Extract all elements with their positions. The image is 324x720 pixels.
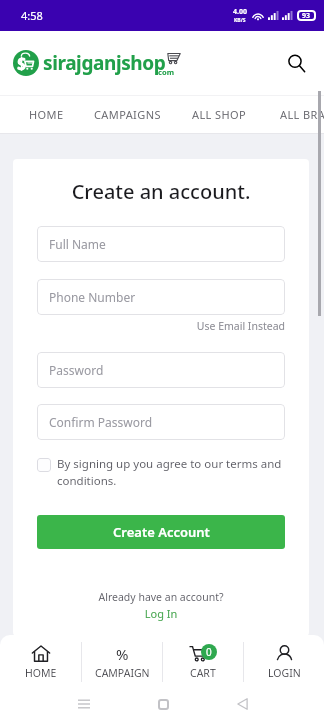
staticText: Full Name [49,236,106,252]
staticText: 4.00 [233,7,247,17]
staticText: By signing up you agree to our terms and… [57,456,289,489]
staticText: Phone Number [49,289,136,305]
button[interactable]: Phone Number [37,279,285,315]
staticText: HOME [25,666,57,680]
staticText: .com [156,67,174,77]
button[interactable]: Use Email Instead [37,319,285,333]
staticText: 0 [206,645,212,659]
button[interactable]: 0 [163,635,243,688]
staticText: sirajganjshop [43,50,166,76]
staticText: LOGIN [268,666,301,680]
staticText: Confirm Password [49,414,153,430]
staticText: HOME [29,107,64,122]
button[interactable]: Back [226,688,258,720]
button[interactable]: CAMPAIGNS [94,107,161,122]
staticText: 4:58 [21,8,43,23]
staticText: CART [190,666,216,680]
staticText: % [116,644,129,663]
button[interactable]: HOME [29,107,64,122]
button[interactable]: Confirm Password [37,404,285,440]
button[interactable]: ALL BRAND [280,107,324,122]
staticText: Password [49,362,104,378]
button[interactable]: Home [147,688,179,720]
staticText: CAMPAIGNS [94,107,161,122]
button[interactable]: Password [37,352,285,388]
staticText: CAMPAIGN [95,666,150,680]
button[interactable]: Search [278,45,314,81]
button[interactable]: Recents [68,688,100,720]
staticText: ALL SHOP [192,107,247,122]
button[interactable]: Log In [37,606,285,621]
staticText: Create an account. [37,178,285,205]
staticText: ALL BRAND [280,107,324,122]
staticText: 93 [302,11,311,21]
staticText: Create Account [113,523,210,541]
button[interactable]: LOGIN [244,635,324,688]
button[interactable]: % [82,635,162,688]
button[interactable]: Create Account [37,515,285,549]
button[interactable]: Full Name [37,226,285,262]
button[interactable]: By signing up you agree to our terms and… [37,456,285,489]
staticText: KB/S [234,17,246,24]
button[interactable]: HOME [0,635,81,688]
staticText: Already have an account? [37,590,285,604]
button[interactable]: ALL SHOP [192,107,247,122]
